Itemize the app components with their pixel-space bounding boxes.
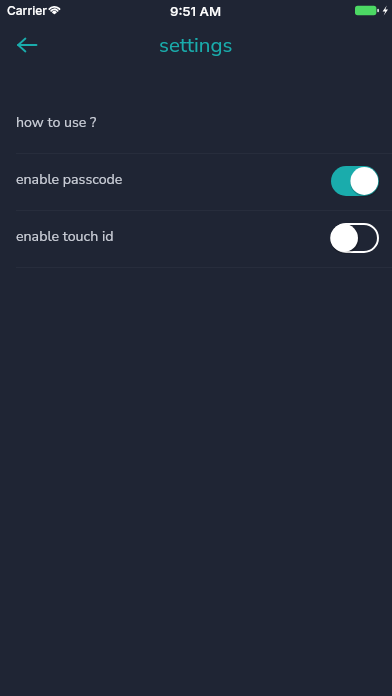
staticText: enable passcode: [16, 170, 123, 189]
button[interactable]: Switch off: [331, 223, 379, 253]
button[interactable]: enable passcode: [0, 154, 392, 211]
button[interactable]: enable touch id: [0, 211, 392, 268]
staticText: Carrier: [7, 3, 47, 18]
staticText: 9:51 AM: [170, 3, 222, 19]
staticText: enable touch id: [16, 227, 114, 246]
button[interactable]: Back: [6, 25, 48, 65]
staticText: settings: [159, 31, 233, 59]
button[interactable]: Switch on: [331, 166, 379, 196]
button[interactable]: how to use ?: [0, 97, 392, 154]
staticText: how to use ?: [16, 113, 97, 132]
